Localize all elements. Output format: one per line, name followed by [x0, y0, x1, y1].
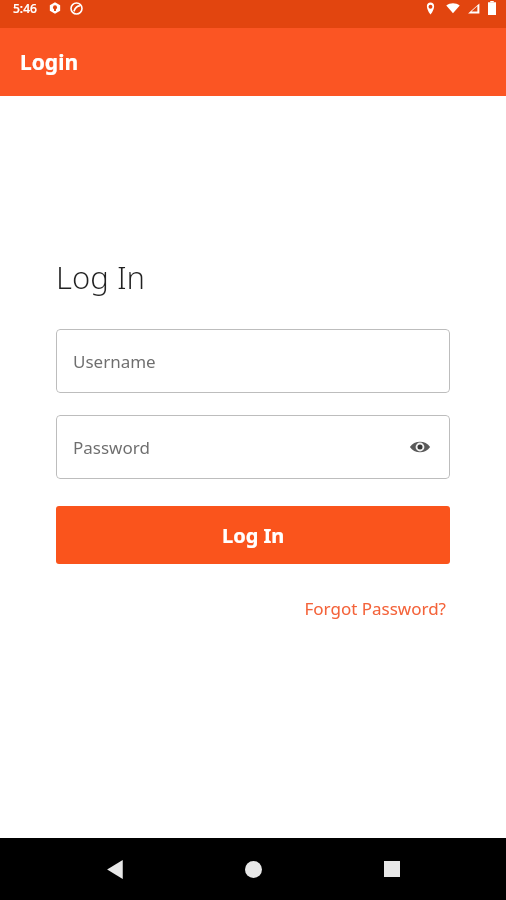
staticText: Username [73, 350, 156, 373]
button[interactable]: Password [56, 415, 450, 479]
staticText: Log In [56, 256, 145, 298]
button[interactable]: Home [229, 845, 277, 893]
button[interactable]: Back [91, 845, 139, 893]
button[interactable]: Forgot Password? [300, 593, 450, 624]
button[interactable]: Show password [407, 434, 433, 460]
staticText: Forgot Password? [304, 597, 446, 620]
staticText: Password [73, 436, 150, 459]
button[interactable]: Recent apps [368, 845, 416, 893]
staticText: 5:46 [13, 0, 37, 16]
staticText: Log In [222, 522, 285, 549]
staticText: Login [20, 48, 79, 77]
button[interactable]: Username [56, 329, 450, 393]
button[interactable]: Log In [56, 506, 450, 564]
